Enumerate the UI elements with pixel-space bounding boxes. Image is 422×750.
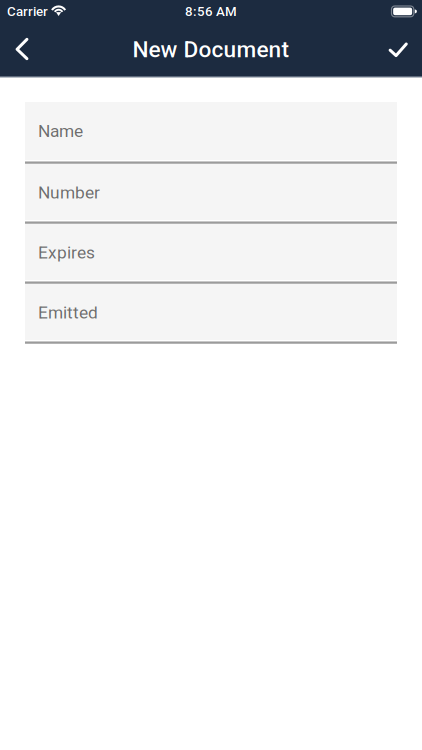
staticText: Expires [38,242,95,263]
button[interactable]: Name [25,102,397,164]
button[interactable]: Back [0,26,44,76]
staticText: Number [38,182,100,203]
button[interactable]: Number [25,164,397,224]
button[interactable]: Emitted [25,284,397,344]
button[interactable]: Expires [25,224,397,284]
button[interactable]: Save [377,26,422,76]
staticText: Emitted [38,302,98,323]
staticText: 8:56 AM [185,4,237,19]
staticText: Name [38,121,83,141]
staticText: New Document [132,36,289,63]
staticText: Carrier [7,4,48,19]
